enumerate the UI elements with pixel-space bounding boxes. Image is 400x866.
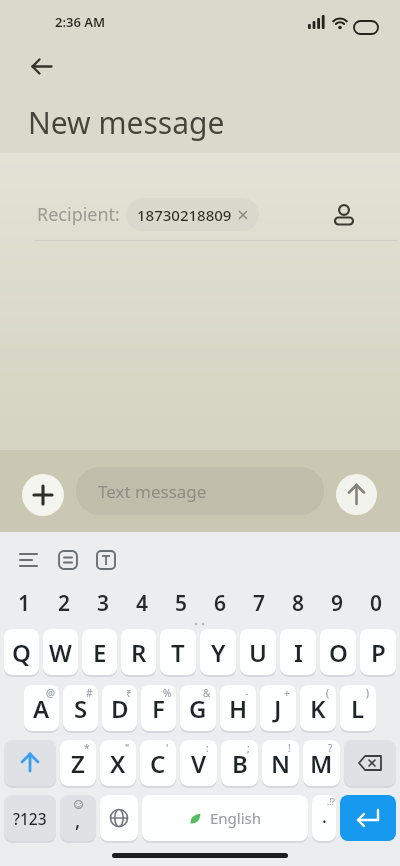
staticText: ; xyxy=(247,741,250,755)
button[interactable]: U xyxy=(240,629,276,675)
staticText: English xyxy=(210,808,262,828)
staticText: C xyxy=(150,747,166,780)
button[interactable]: ?123 xyxy=(4,795,56,841)
button[interactable] xyxy=(90,544,122,576)
button[interactable]: G xyxy=(180,685,216,731)
staticText: D xyxy=(111,692,129,725)
staticText: N xyxy=(271,747,291,780)
staticText: K xyxy=(310,692,326,725)
button[interactable]: W xyxy=(43,629,78,675)
button[interactable]: 2 xyxy=(44,578,84,629)
staticText: 2:36 AM xyxy=(55,13,106,31)
staticText: B xyxy=(232,747,248,780)
button[interactable] xyxy=(22,474,64,516)
staticText: New message xyxy=(28,102,225,143)
staticText: U xyxy=(249,636,267,669)
button[interactable]: H xyxy=(220,685,256,731)
staticText: P xyxy=(371,636,386,669)
staticText: 5 xyxy=(175,589,188,618)
staticText: + xyxy=(284,686,290,700)
button[interactable]: F xyxy=(141,685,176,731)
button[interactable]: N xyxy=(262,740,299,786)
button[interactable]: , xyxy=(60,795,96,841)
button[interactable]: 8 xyxy=(279,578,318,629)
staticText: S xyxy=(74,692,88,725)
staticText: " xyxy=(125,741,130,755)
button[interactable]: 1 xyxy=(4,578,44,629)
button[interactable]: T xyxy=(160,629,196,675)
staticText: : xyxy=(206,741,209,755)
staticText: - xyxy=(245,686,249,700)
button[interactable]: 9 xyxy=(318,578,357,629)
button[interactable]: C xyxy=(140,740,176,786)
staticText: L xyxy=(351,692,365,725)
button[interactable]: Z xyxy=(60,740,96,786)
button[interactable] xyxy=(4,740,56,786)
staticText: O xyxy=(329,636,348,669)
button[interactable]: 5 xyxy=(162,578,201,629)
button[interactable]: 6 xyxy=(201,578,240,629)
button[interactable]: R xyxy=(121,629,156,675)
button[interactable]: E xyxy=(82,629,117,675)
staticText: G xyxy=(189,692,207,725)
button[interactable] xyxy=(12,544,44,576)
staticText: ?123 xyxy=(13,808,47,829)
staticText: 3 xyxy=(97,589,110,618)
button[interactable] xyxy=(340,795,396,841)
staticText: , xyxy=(75,807,81,833)
staticText: T xyxy=(171,636,185,669)
button[interactable] xyxy=(52,544,84,576)
button[interactable]: M xyxy=(303,740,340,786)
button[interactable]: X xyxy=(100,740,136,786)
staticText: ? xyxy=(328,741,333,755)
staticText: W xyxy=(49,636,72,669)
staticText: F xyxy=(152,692,165,725)
button[interactable]: Q xyxy=(4,629,39,675)
button[interactable]: S xyxy=(63,685,98,731)
staticText: & xyxy=(203,686,211,700)
staticText: .!? xyxy=(327,796,335,807)
button[interactable]: P xyxy=(360,629,396,675)
button[interactable]: 18730218809 xyxy=(126,198,259,231)
button[interactable]: 4 xyxy=(123,578,162,629)
staticText: Text message xyxy=(98,480,207,503)
button[interactable]: I xyxy=(280,629,316,675)
button[interactable]: L xyxy=(340,685,376,731)
staticText: 6 xyxy=(214,589,227,618)
button[interactable] xyxy=(22,48,62,84)
button[interactable]: 0 xyxy=(357,578,396,629)
staticText: A xyxy=(33,692,50,725)
staticText: 18730218809 xyxy=(137,205,232,225)
staticText: 7 xyxy=(253,589,266,618)
button[interactable]: 3 xyxy=(84,578,123,629)
staticText: Z xyxy=(71,747,85,780)
button[interactable]: Y xyxy=(200,629,236,675)
staticText: I xyxy=(294,636,303,669)
button[interactable] xyxy=(336,474,377,515)
button[interactable]: D xyxy=(102,685,137,731)
button[interactable]: . xyxy=(312,795,336,841)
button[interactable]: V xyxy=(180,740,217,786)
staticText: * xyxy=(84,741,90,755)
staticText: ) xyxy=(366,686,369,700)
button[interactable]: A xyxy=(24,685,59,731)
staticText: V xyxy=(191,747,207,780)
staticText: # xyxy=(86,686,93,700)
staticText: J xyxy=(274,692,282,725)
staticText: Recipient: xyxy=(37,202,120,227)
staticText: 9 xyxy=(331,589,344,618)
staticText: 0 xyxy=(370,589,383,618)
button[interactable]: 7 xyxy=(240,578,279,629)
button[interactable] xyxy=(326,197,362,231)
button[interactable]: B xyxy=(221,740,258,786)
button[interactable]: O xyxy=(320,629,356,675)
staticText: Y xyxy=(211,636,226,669)
button[interactable]: Text message xyxy=(76,467,324,515)
button[interactable] xyxy=(100,795,138,841)
button[interactable] xyxy=(344,740,396,786)
staticText: E xyxy=(93,636,107,669)
button[interactable]: English xyxy=(142,795,308,841)
button[interactable]: K xyxy=(300,685,336,731)
staticText: R xyxy=(131,636,147,669)
button[interactable]: J xyxy=(260,685,296,731)
